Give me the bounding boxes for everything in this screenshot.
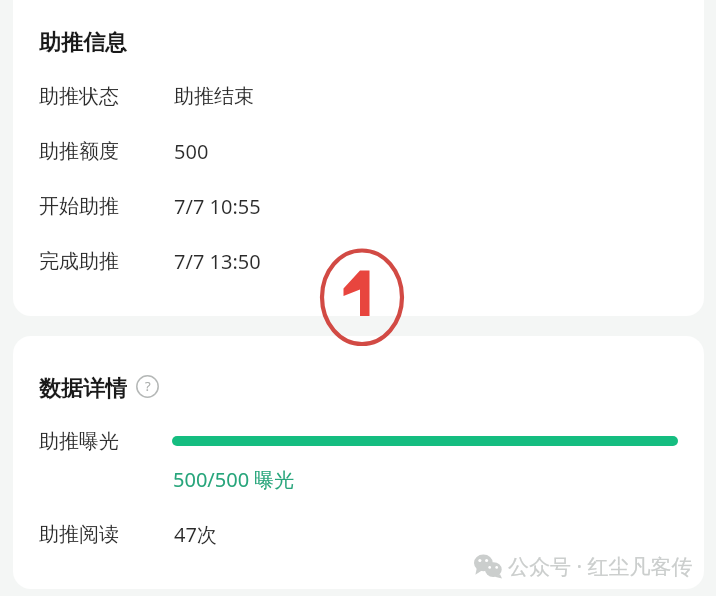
staticText: 数据详情 bbox=[39, 375, 127, 400]
button[interactable]: 助推状态 bbox=[13, 69, 704, 124]
button[interactable]: 开始助推 bbox=[13, 179, 704, 234]
staticText: 500/500 曝光 bbox=[173, 466, 295, 493]
button[interactable]: 完成助推 bbox=[13, 234, 704, 289]
staticText: 47次 bbox=[174, 521, 217, 548]
staticText: 完成助推 bbox=[39, 249, 119, 274]
button[interactable]: 助推阅读 bbox=[13, 507, 704, 562]
staticText: 7/7 10:55 bbox=[174, 193, 261, 220]
staticText: 助推信息 bbox=[39, 29, 127, 57]
button[interactable]: What is this? Help bbox=[136, 375, 159, 398]
other: WeChat official account bbox=[474, 554, 502, 578]
staticText: 公众号 · 红尘凡客传 bbox=[508, 552, 693, 581]
staticText: 助推额度 bbox=[39, 139, 119, 164]
staticText: 500 bbox=[174, 138, 209, 165]
staticText: 助推阅读 bbox=[39, 522, 119, 547]
staticText: 助推状态 bbox=[39, 84, 119, 109]
staticText: 开始助推 bbox=[39, 194, 119, 219]
staticText: 助推曝光 bbox=[39, 429, 119, 454]
other: Annotation 1 bbox=[318, 246, 406, 348]
button[interactable]: 助推额度 bbox=[13, 124, 704, 179]
button[interactable]: 数据详情 bbox=[39, 375, 127, 400]
staticText: ? bbox=[145, 377, 151, 395]
staticText: 助推结束 bbox=[174, 84, 254, 109]
button[interactable]: 助推曝光 bbox=[13, 420, 704, 500]
staticText: 7/7 13:50 bbox=[174, 248, 261, 275]
